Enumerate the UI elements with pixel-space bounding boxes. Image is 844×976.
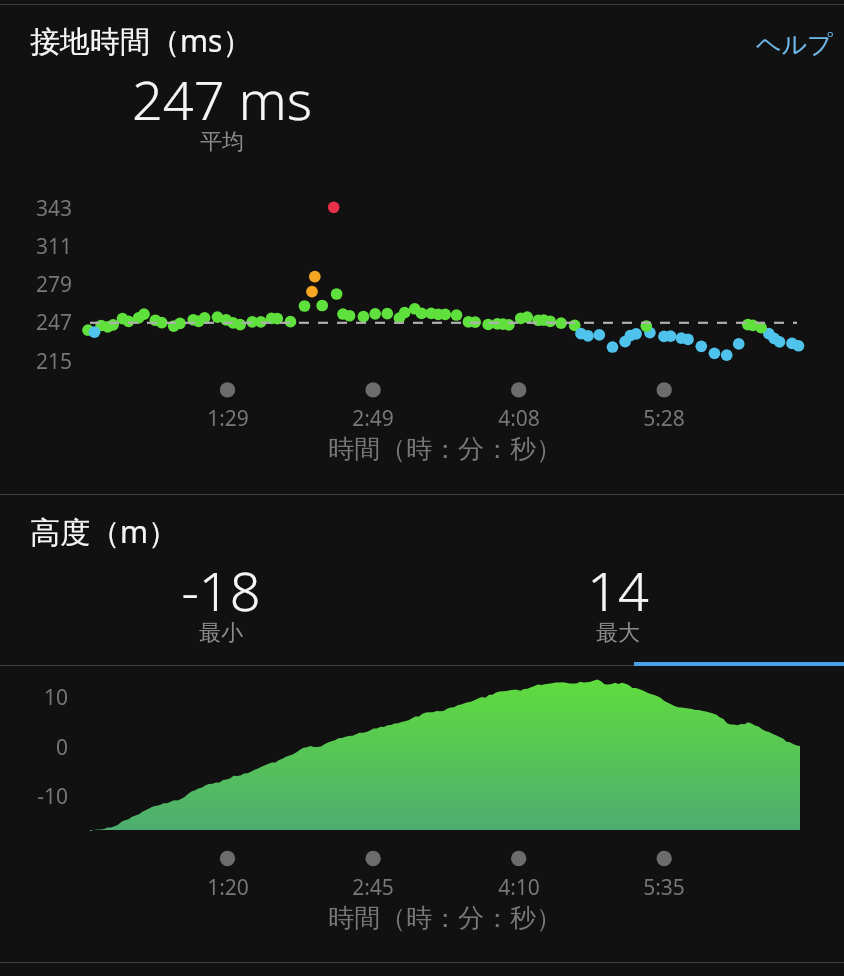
staticText: ヘルプ xyxy=(756,29,833,60)
staticText: 2:45 xyxy=(303,873,443,902)
staticText: 時間（時：分：秒） xyxy=(235,433,655,466)
staticText: 4:08 xyxy=(449,404,589,433)
staticText: 14 xyxy=(468,553,768,627)
staticText: 平均 xyxy=(142,128,302,156)
staticText: 311 xyxy=(0,232,72,261)
staticText: 時間（時：分：秒） xyxy=(235,902,655,935)
staticText: 高度（m） xyxy=(30,511,179,552)
staticText: 2:49 xyxy=(303,404,443,433)
staticText: 247 xyxy=(0,308,72,337)
staticText: 0 xyxy=(0,733,68,762)
staticText: 215 xyxy=(0,347,72,376)
staticText: 最大 xyxy=(538,619,698,647)
staticText: 343 xyxy=(0,194,72,223)
staticText: 5:35 xyxy=(594,873,734,902)
staticText: -18 xyxy=(71,553,371,627)
staticText: 247 ms xyxy=(62,62,382,136)
button[interactable] xyxy=(0,10,844,70)
staticText: 5:28 xyxy=(594,404,734,433)
staticText: 10 xyxy=(0,683,68,712)
staticText: 4:10 xyxy=(449,873,589,902)
staticText: 1:20 xyxy=(158,873,298,902)
staticText: 279 xyxy=(0,270,72,299)
staticText: 最小 xyxy=(141,619,301,647)
staticText: -10 xyxy=(0,782,68,811)
staticText: 接地時間（ms） xyxy=(30,20,253,61)
staticText: 1:29 xyxy=(158,404,298,433)
button[interactable]: ヘルプ xyxy=(748,23,841,66)
